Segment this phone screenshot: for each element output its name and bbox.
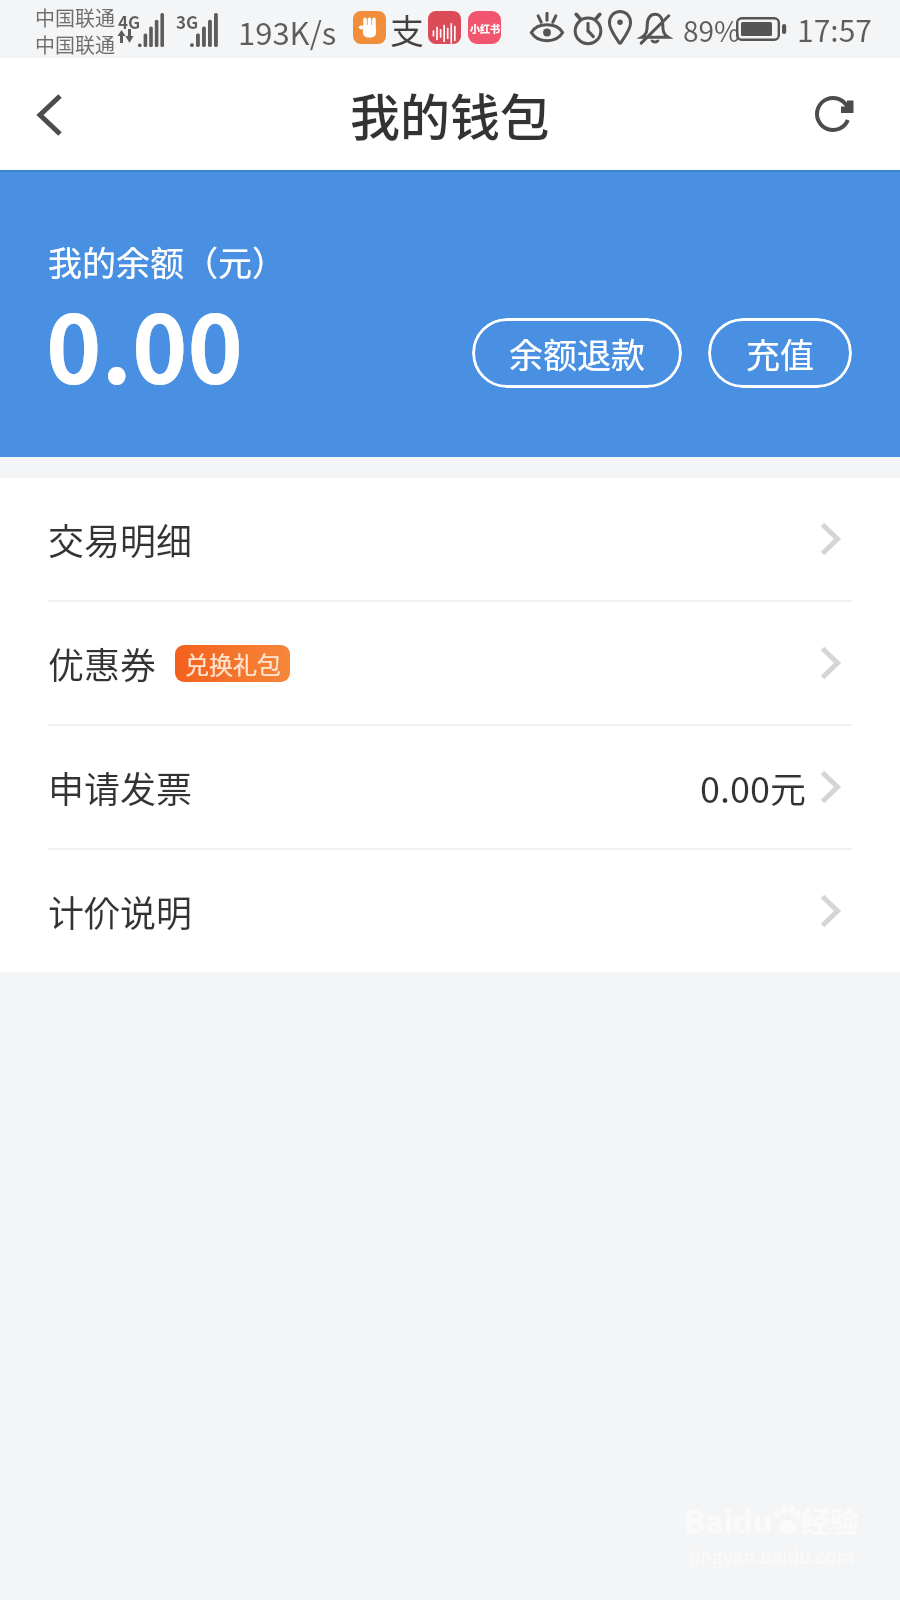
staticText: 89% bbox=[683, 10, 740, 51]
staticText: 4G bbox=[118, 9, 141, 34]
staticText: 交易明细 bbox=[48, 513, 193, 565]
staticText: 0.00元 bbox=[700, 761, 806, 813]
button[interactable]: 余额退款 bbox=[472, 318, 682, 388]
staticText: 0.00 bbox=[46, 275, 243, 411]
staticText: 申请发票 bbox=[48, 761, 193, 813]
staticText: 兑换礼包 bbox=[185, 646, 281, 681]
staticText: 17:57 bbox=[797, 7, 872, 50]
staticText: 优惠券 bbox=[48, 637, 157, 689]
staticText: 3G bbox=[176, 9, 199, 34]
staticText: 余额退款 bbox=[509, 329, 645, 378]
button[interactable]: 兑换礼包 bbox=[175, 645, 290, 682]
button[interactable]: 交易明细 bbox=[0, 478, 900, 600]
button[interactable]: 申请发票 bbox=[0, 726, 900, 848]
staticText: 中国联通 bbox=[35, 30, 115, 59]
button[interactable]: Refresh bbox=[807, 84, 869, 146]
staticText: 计价说明 bbox=[48, 885, 193, 937]
button[interactable]: Back bbox=[18, 84, 82, 148]
staticText: 小红书 bbox=[470, 21, 500, 35]
button[interactable]: 计价说明 bbox=[0, 850, 900, 972]
staticText: 充值 bbox=[746, 329, 814, 378]
staticText: 193K/s bbox=[238, 9, 337, 54]
staticText: 我的余额（元） bbox=[48, 237, 286, 286]
staticText: 支 bbox=[390, 5, 424, 54]
staticText: 我的钱包 bbox=[350, 78, 550, 150]
button[interactable]: 充值 bbox=[708, 318, 852, 388]
button[interactable]: 优惠券 bbox=[0, 602, 900, 724]
staticText: 中国联通 bbox=[35, 3, 115, 32]
